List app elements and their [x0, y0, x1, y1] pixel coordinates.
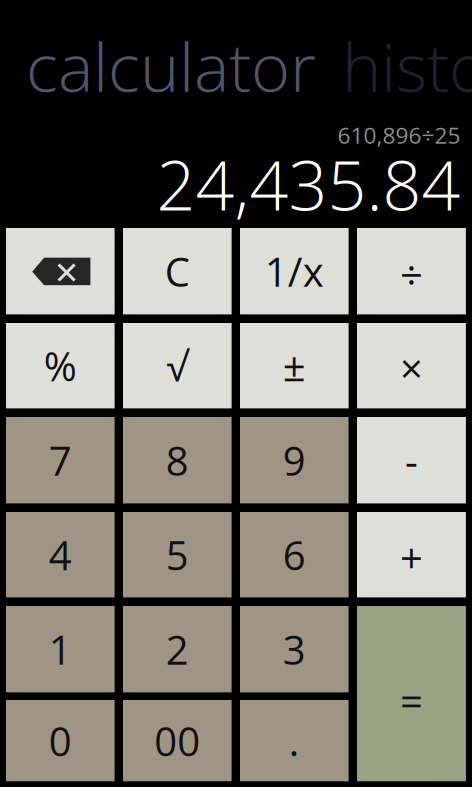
button[interactable]: 3 — [240, 606, 349, 692]
button[interactable]: 2 — [123, 606, 232, 692]
staticText: 24,435.84 — [156, 138, 460, 230]
staticText: = — [400, 673, 423, 728]
staticText: % — [44, 338, 77, 393]
button[interactable]: 4 — [6, 512, 115, 597]
button[interactable]: √ — [123, 323, 232, 408]
staticText: calculator — [26, 21, 316, 111]
staticText: × — [400, 340, 423, 395]
button[interactable]: 7 — [6, 417, 115, 503]
button[interactable]: 9 — [240, 417, 349, 503]
staticText: √ — [166, 338, 188, 393]
staticText: 6 — [283, 527, 306, 582]
staticText: 5 — [166, 527, 189, 582]
staticText: 610,896÷25 — [337, 120, 460, 150]
staticText: 1 — [49, 622, 72, 676]
staticText: 3 — [283, 622, 306, 676]
staticText: . — [289, 713, 300, 768]
button[interactable]: % — [6, 323, 115, 408]
staticText: 4 — [49, 527, 72, 582]
button[interactable]: 0 — [6, 700, 115, 781]
button[interactable]: Backspace — [6, 228, 115, 314]
staticText: + — [400, 530, 423, 585]
staticText: 2 — [166, 622, 189, 676]
staticText: 00 — [154, 713, 200, 768]
button[interactable]: = — [357, 606, 466, 781]
staticText: - — [405, 433, 418, 487]
button[interactable]: 6 — [240, 512, 349, 597]
staticText: 1/x — [265, 244, 324, 298]
button[interactable]: calculator — [26, 21, 316, 111]
button[interactable]: - — [357, 417, 466, 503]
button[interactable]: C — [123, 228, 232, 314]
staticText: ÷ — [400, 247, 423, 301]
button[interactable]: history — [342, 21, 472, 111]
staticText: ± — [283, 338, 306, 393]
button[interactable]: ± — [240, 323, 349, 408]
button[interactable]: 00 — [123, 700, 232, 781]
staticText: 0 — [49, 713, 72, 768]
staticText: 9 — [283, 433, 306, 487]
button[interactable]: × — [357, 323, 466, 408]
staticText: 7 — [49, 433, 72, 487]
button[interactable]: + — [357, 512, 466, 597]
button[interactable]: 1/x — [240, 228, 349, 314]
button[interactable]: 1 — [6, 606, 115, 692]
button[interactable]: 8 — [123, 417, 232, 503]
staticText: C — [165, 244, 190, 298]
staticText: 8 — [166, 433, 189, 487]
staticText: history — [342, 21, 472, 111]
button[interactable]: 5 — [123, 512, 232, 597]
button[interactable]: ÷ — [357, 228, 466, 314]
button[interactable]: . — [240, 700, 349, 781]
